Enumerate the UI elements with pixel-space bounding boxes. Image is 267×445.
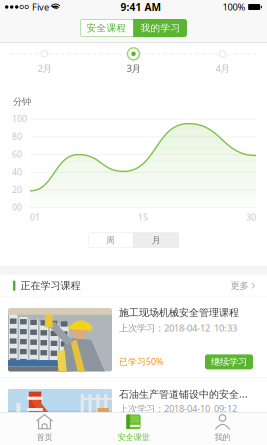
- staticText: 施工现场机械安全管理课程: [119, 306, 239, 319]
- button[interactable]: 石油生产管道铺设中的安全...: [0, 378, 267, 445]
- staticText: 9:41 AM: [121, 0, 162, 14]
- button[interactable]: 安全课程: [80, 19, 133, 37]
- button[interactable]: 更多: [230, 276, 255, 296]
- staticText: 继续学习: [211, 437, 247, 445]
- staticText: Five: [32, 1, 49, 13]
- button[interactable]: 我的学习: [134, 19, 187, 37]
- staticText: 上次学习：2018-04-10 09:12: [119, 402, 237, 415]
- staticText: 我的学习: [140, 22, 180, 34]
- staticText: 100: [12, 113, 27, 125]
- staticText: 安全课程: [87, 22, 127, 34]
- staticText: 4月: [215, 62, 229, 74]
- staticText: 20: [12, 183, 22, 195]
- button[interactable]: 施工现场机械安全管理课程: [0, 297, 267, 377]
- button[interactable]: 安全课堂: [89, 412, 178, 445]
- staticText: 安全课堂: [117, 432, 149, 442]
- staticText: 首页: [36, 432, 52, 442]
- staticText: 15: [138, 211, 148, 223]
- staticText: 30: [246, 211, 256, 223]
- staticText: 80: [12, 130, 22, 142]
- staticText: 继续学习: [211, 356, 247, 368]
- staticText: 已学习50%: [119, 355, 163, 367]
- staticText: 周: [106, 235, 115, 246]
- staticText: 我的: [214, 432, 230, 442]
- staticText: 2月: [37, 62, 51, 74]
- button[interactable]: 首页: [0, 412, 89, 445]
- button[interactable]: 3月: [89, 47, 178, 74]
- staticText: 3月: [126, 62, 140, 74]
- staticText: 上次学习：2018-04-12 10:33: [119, 321, 237, 334]
- staticText: 已学习30%: [119, 436, 163, 445]
- staticText: 40: [12, 166, 22, 178]
- staticText: 月: [152, 235, 161, 246]
- button[interactable]: 周: [88, 233, 133, 248]
- staticText: 正在学习课程: [20, 279, 80, 292]
- staticText: 00: [12, 201, 22, 213]
- button[interactable]: 4月: [178, 47, 267, 74]
- staticText: 分钟: [13, 96, 31, 107]
- staticText: 01: [30, 211, 40, 223]
- button[interactable]: 月: [134, 233, 179, 248]
- button[interactable]: 我的: [178, 412, 267, 445]
- staticText: 石油生产管道铺设中的安全...: [119, 387, 248, 401]
- button[interactable]: 2月: [0, 47, 89, 74]
- staticText: 更多: [230, 280, 248, 292]
- staticText: 100%: [222, 1, 245, 13]
- staticText: 60: [12, 148, 22, 160]
